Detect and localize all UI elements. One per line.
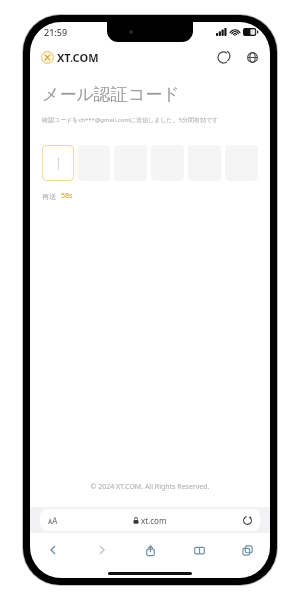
button[interactable]: Back bbox=[44, 541, 62, 559]
button[interactable]: XT.COM bbox=[41, 50, 99, 65]
staticText: xt.com bbox=[141, 515, 167, 526]
button[interactable]: Reload bbox=[242, 515, 253, 526]
staticText: メール認証コード bbox=[42, 84, 180, 105]
button[interactable]: Share bbox=[141, 541, 159, 559]
button[interactable]: Bookmarks bbox=[190, 541, 208, 559]
staticText: © 2024 XT.COM. All Rights Reserved. bbox=[30, 482, 270, 492]
staticText: 58s bbox=[61, 191, 73, 201]
button[interactable]: Dark mode bbox=[215, 49, 231, 65]
staticText: 再送 bbox=[42, 192, 56, 201]
staticText: 確認コードをch***@gmail.comに送信しました。5分間有効です bbox=[42, 116, 219, 124]
button[interactable]: ᴀA bbox=[40, 509, 260, 531]
button[interactable]: 58s bbox=[61, 191, 73, 201]
button[interactable]: Language bbox=[244, 49, 260, 65]
staticText: XT.COM bbox=[57, 50, 99, 65]
button[interactable]: Forward bbox=[93, 541, 111, 559]
button[interactable]: Tabs bbox=[238, 541, 256, 559]
button[interactable] bbox=[42, 145, 74, 181]
staticText: 21:59 bbox=[44, 26, 68, 38]
staticText: ᴀA bbox=[48, 515, 58, 526]
